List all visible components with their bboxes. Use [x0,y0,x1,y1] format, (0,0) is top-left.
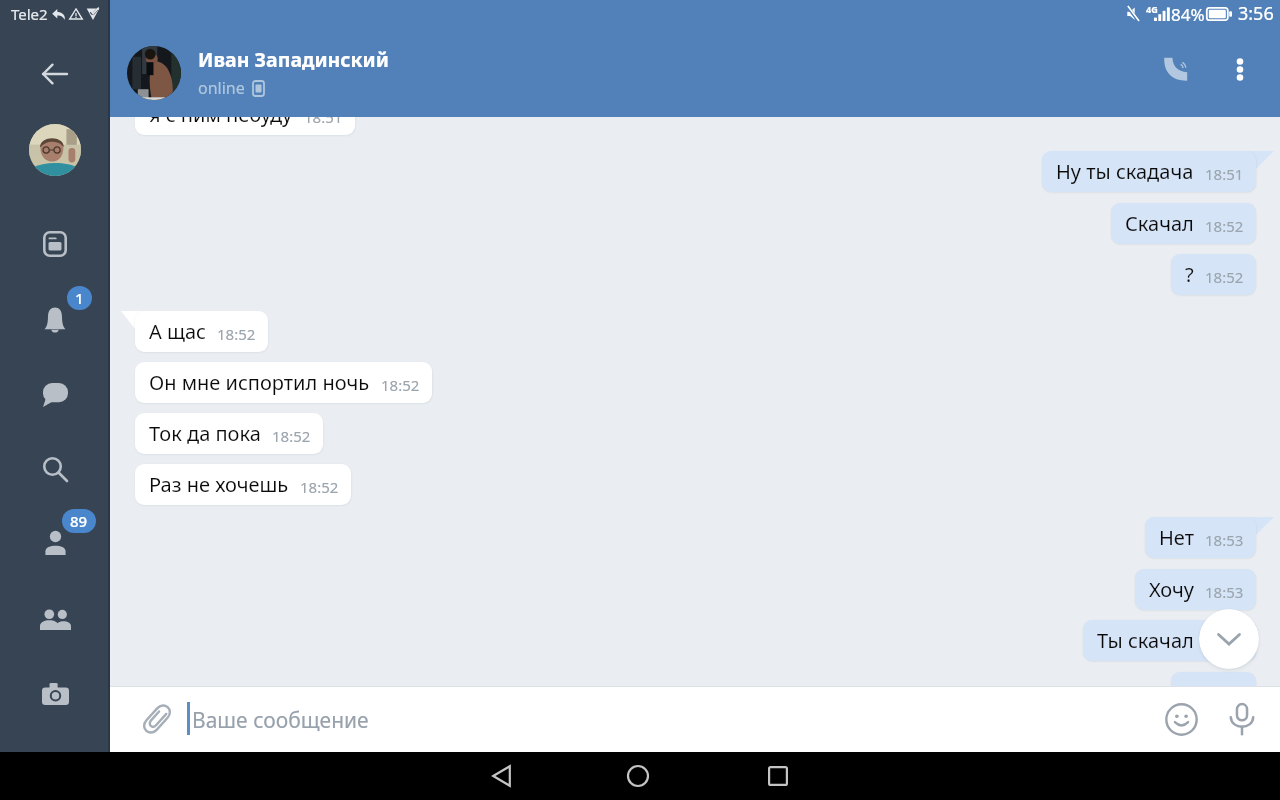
staticText: Ваше сообщение [192,706,369,735]
staticText: Иван Западинский [198,46,389,73]
button[interactable]: Messages [29,369,81,421]
staticText: 18:52 [381,375,420,395]
button[interactable]: Contact avatar [127,46,181,100]
staticText: 4G [1146,12,1158,24]
button[interactable]: ? [1171,254,1256,295]
staticText: 18:52 [1205,216,1244,236]
staticText: 4G [1146,3,1158,15]
staticText: Ну ты скадача [1056,158,1194,185]
staticText: 18:52 [1205,267,1244,287]
button[interactable]: Scroll to bottom [1199,609,1259,669]
button[interactable]: Ток да пока [135,413,323,454]
staticText: Скачал [1125,210,1194,237]
staticText: ? [1185,261,1194,288]
staticText: online [198,77,245,99]
button[interactable]: Attach file [127,689,187,749]
button[interactable]: Camera [29,668,81,720]
staticText: 89 [70,511,88,531]
button[interactable]: Хочу [1135,569,1256,610]
button[interactable]: Emoji [1151,689,1211,749]
button[interactable]: Recents [738,756,818,796]
button[interactable]: More options [1210,39,1270,99]
staticText: Ток да пока [149,420,261,447]
staticText: Раз не хочешь [149,471,289,498]
button[interactable]: Profile [29,124,81,176]
button[interactable]: Он мне испортил ночь [135,362,432,403]
button[interactable]: Ты скачал [1083,620,1256,661]
button[interactable]: Нет [1145,517,1256,558]
button[interactable]: Home [598,756,678,796]
staticText: 18:53 [1205,633,1244,653]
button[interactable]: Search [29,443,81,495]
staticText: Он мне испортил ночь [149,369,370,396]
button[interactable]: я с ним небуду [135,117,355,135]
staticText: 18:52 [217,324,256,344]
staticText: я с ним небуду [149,117,293,128]
button[interactable]: Back [27,46,83,102]
button[interactable]: Notifications [29,293,81,345]
button[interactable]: ? [1171,672,1256,686]
staticText: 18:52 [300,477,339,497]
staticText: 18:51 [304,117,343,127]
button[interactable]: Voice message [1212,689,1272,749]
button[interactable]: Groups [29,593,81,645]
button[interactable]: А щас [135,311,268,352]
staticText: 3:56 [1238,1,1274,26]
staticText: 18:53 [1205,530,1244,550]
staticText: Tele2 [11,4,48,24]
button[interactable]: Ну ты скадача [1042,151,1256,192]
button[interactable]: Friends [29,516,81,568]
staticText: Хочу [1149,576,1194,603]
button[interactable]: Call [1146,39,1206,99]
staticText: 18:53 [1205,582,1244,602]
button[interactable]: Раз не хочешь [135,464,351,505]
button[interactable]: News [29,218,81,270]
staticText: Нет [1159,524,1194,551]
staticText: 18:51 [1205,164,1244,184]
button[interactable]: Скачал [1111,203,1256,244]
staticText: 84% [1171,3,1205,26]
button[interactable]: Back [461,756,541,796]
staticText: Ты скачал [1097,627,1194,654]
staticText: А щас [149,318,206,345]
staticText: 1 [75,288,84,308]
staticText: 18:52 [272,426,311,446]
